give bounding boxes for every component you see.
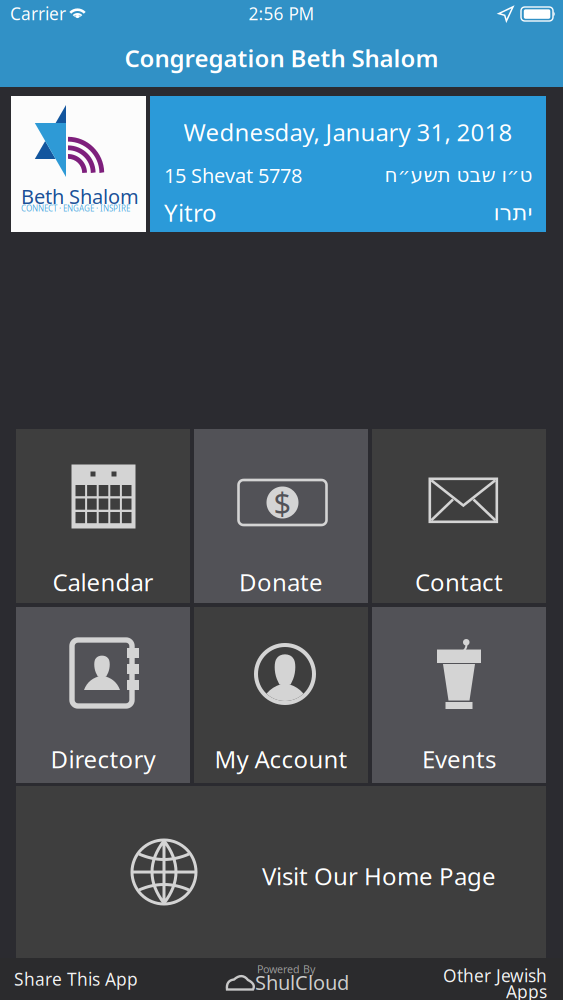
staticText: Powered By — [257, 962, 315, 976]
staticText: יתרו — [493, 199, 532, 225]
staticText: Apps — [506, 980, 547, 1000]
button[interactable]: Calendar — [16, 429, 190, 603]
staticText: ט״ו שבט תשע״ח — [384, 164, 532, 186]
staticText: Contact — [415, 566, 503, 598]
staticText: Visit Our Home Page — [262, 860, 496, 892]
staticText: $ — [273, 482, 291, 523]
staticText: Share This App — [14, 967, 138, 990]
staticText: 15 Shevat 5778 — [164, 162, 302, 188]
button[interactable]: Other Jewish — [427, 958, 547, 1000]
staticText: CONNECT · ENGAGE · INSPIRE — [21, 203, 130, 214]
staticText: Carrier — [10, 2, 66, 25]
staticText: Calendar — [52, 566, 153, 598]
button[interactable]: Directory — [16, 607, 190, 783]
button[interactable]: Contact — [372, 429, 546, 603]
button[interactable]: Share This App — [0, 958, 154, 1000]
button[interactable]: Events — [372, 607, 546, 783]
button[interactable]: Visit Our Home Page — [16, 786, 546, 958]
staticText: Wednesday, January 31, 2018 — [183, 116, 512, 148]
staticText: Yitro — [164, 196, 217, 228]
staticText: 2:56 PM — [248, 2, 314, 25]
staticText: Donate — [239, 566, 323, 598]
button[interactable]: $ — [194, 429, 368, 603]
staticText: Directory — [50, 743, 155, 775]
staticText: Other Jewish — [443, 964, 547, 987]
button[interactable]: Powered By — [224, 958, 344, 1000]
staticText: Congregation Beth Shalom — [124, 42, 438, 74]
button[interactable]: My Account — [194, 607, 368, 783]
staticText: Events — [422, 743, 496, 775]
staticText: ShulCloud — [255, 969, 349, 996]
staticText: Beth Shalom — [21, 183, 139, 210]
staticText: My Account — [214, 743, 347, 775]
